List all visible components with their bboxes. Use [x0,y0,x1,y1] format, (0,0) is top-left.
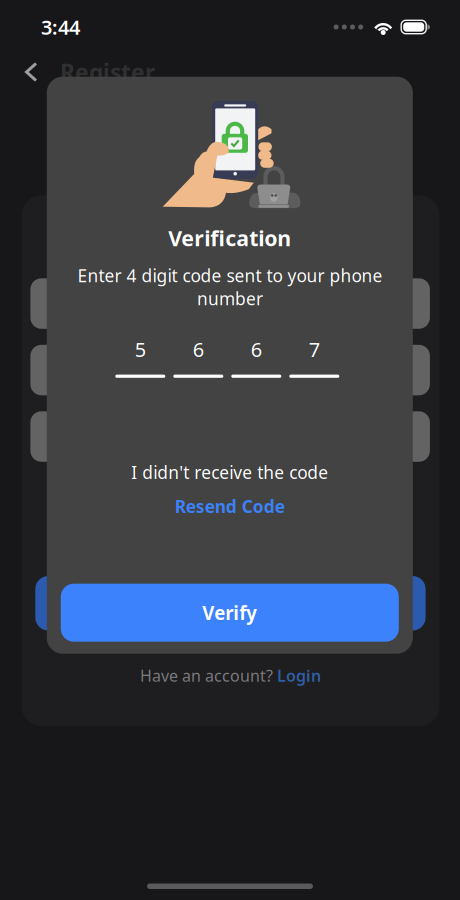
staticText: Have an account? [140,665,273,686]
staticText: Register [60,57,155,87]
staticText: Verification [168,224,291,252]
staticText: Enter 4 digit code sent to your phone nu… [77,264,382,310]
button[interactable]: Resend Code [175,495,285,518]
staticText: 6 [193,336,204,363]
staticText: I didn't receive the code [131,461,328,484]
staticText: 6 [251,336,262,363]
button[interactable] [35,576,426,630]
staticText: Verify [202,600,257,625]
staticText: Login [277,665,321,686]
staticText: Resend Code [175,495,285,518]
button[interactable]: Verify [61,584,399,642]
staticText: 7 [309,336,320,363]
button[interactable]: Back [17,54,46,90]
staticText: 5 [135,336,146,363]
staticText: 3:44 [41,14,80,40]
button[interactable]: Login [277,665,321,686]
